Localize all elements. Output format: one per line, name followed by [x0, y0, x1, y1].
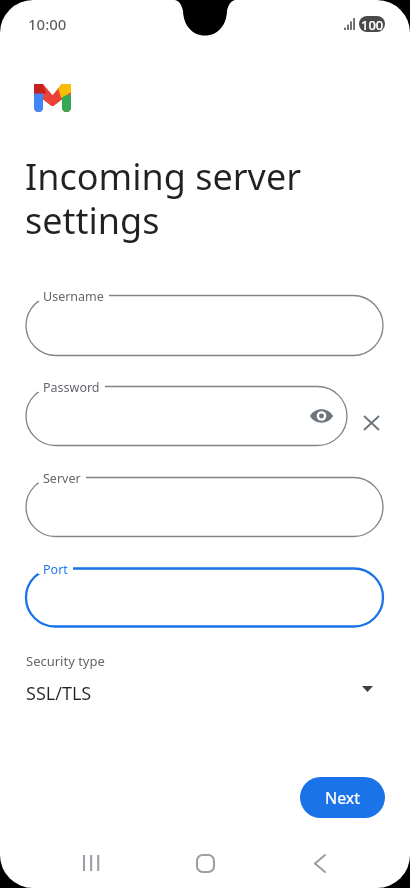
button[interactable]: Security type [0, 650, 410, 708]
button[interactable]: Recent apps [64, 836, 118, 888]
staticText: Port [43, 561, 68, 578]
staticText: 10:00 [28, 14, 67, 34]
staticText: Incoming server settings [25, 152, 302, 244]
button[interactable]: Clear [353, 405, 389, 441]
staticText: Username [43, 288, 104, 305]
button[interactable]: Username [0, 295, 410, 356]
button[interactable]: Password [0, 386, 410, 446]
staticText: SSL/TLS [26, 681, 92, 706]
staticText: Security type [26, 652, 105, 670]
button[interactable]: Show password [303, 397, 340, 434]
button[interactable]: Port [0, 568, 410, 627]
staticText: Password [43, 379, 100, 396]
staticText: Next [325, 787, 361, 809]
staticText: Server [43, 470, 81, 487]
button[interactable]: Server [0, 477, 410, 537]
button[interactable]: Next [300, 777, 385, 818]
button[interactable]: Home [178, 836, 232, 888]
button[interactable]: Back [293, 836, 347, 888]
staticText: 100 [361, 16, 384, 32]
